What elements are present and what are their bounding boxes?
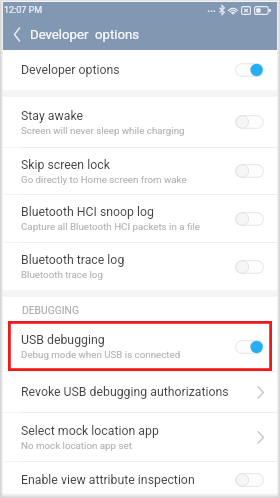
other: Toggle (235, 340, 264, 354)
staticText: Select mock location app (21, 424, 159, 438)
staticText: Skip screen lock (21, 158, 110, 172)
button[interactable]: Revoke USB debugging authorizations (3, 372, 277, 412)
staticText: No mock location app set (21, 440, 132, 451)
staticText: 12:07 PM (4, 5, 43, 16)
button[interactable]: Bluetooth HCI snoop log (3, 195, 277, 242)
other: Toggle (235, 260, 264, 274)
staticText: Developer options (21, 63, 120, 77)
staticText: Capture all Bluetooth HCI packets in a f… (21, 221, 200, 232)
staticText: Enable view attribute inspection (21, 473, 195, 487)
other: Open (257, 386, 264, 399)
staticText: Debug mode when USB is connected (21, 349, 181, 360)
button[interactable]: Skip screen lock (3, 148, 277, 194)
button[interactable]: Developer options (3, 50, 277, 90)
staticText: Developer options (30, 27, 140, 42)
staticText: DEBUGGING (22, 304, 79, 316)
staticText: USB debugging (21, 333, 105, 347)
button[interactable]: Stay awake (3, 97, 277, 147)
staticText: Go directly to Home screen from wake (21, 174, 187, 185)
other: Toggle (235, 473, 264, 487)
staticText: Bluetooth HCI snoop log (21, 205, 154, 219)
other: Toggle (235, 212, 264, 226)
other: Toggle (235, 63, 264, 77)
other: Open (257, 431, 264, 444)
staticText: Bluetooth trace log (21, 253, 125, 267)
button[interactable]: Enable view attribute inspection (3, 462, 277, 498)
button[interactable]: Back (3, 18, 30, 51)
other: Toggle (235, 115, 264, 129)
staticText: Screen will never sleep while charging (21, 125, 185, 136)
button[interactable]: Bluetooth trace log (3, 243, 277, 290)
button[interactable]: Select mock location app (3, 413, 277, 461)
other: Toggle (235, 164, 264, 178)
staticText: Revoke USB debugging authorizations (21, 385, 229, 399)
button[interactable]: USB debugging (3, 322, 277, 371)
staticText: Bluetooth trace log (21, 269, 103, 280)
staticText: Stay awake (21, 109, 84, 123)
